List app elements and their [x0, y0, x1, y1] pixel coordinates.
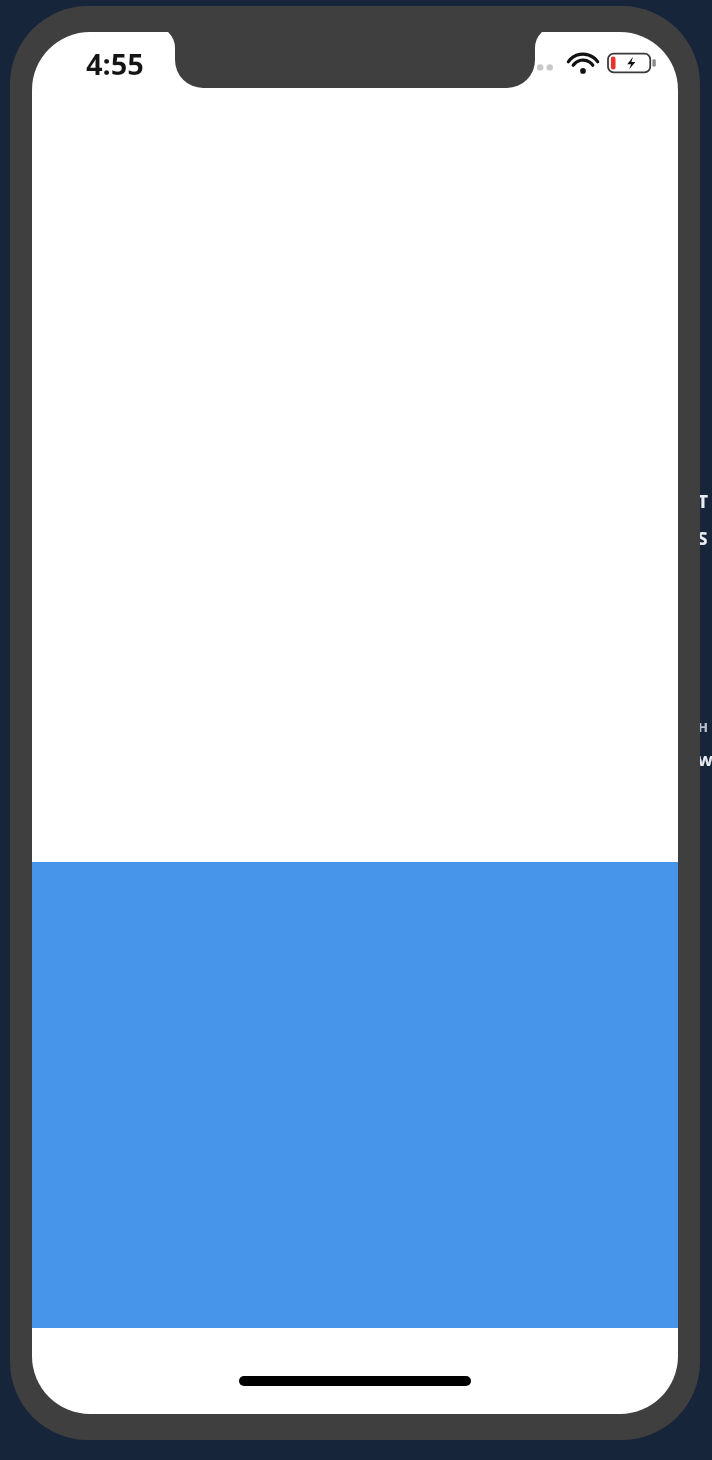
staticText: H [698, 718, 708, 736]
staticText: T [698, 490, 708, 513]
staticText: 4:55 [86, 44, 144, 83]
staticText: W [698, 750, 712, 770]
staticText: S [698, 527, 708, 550]
